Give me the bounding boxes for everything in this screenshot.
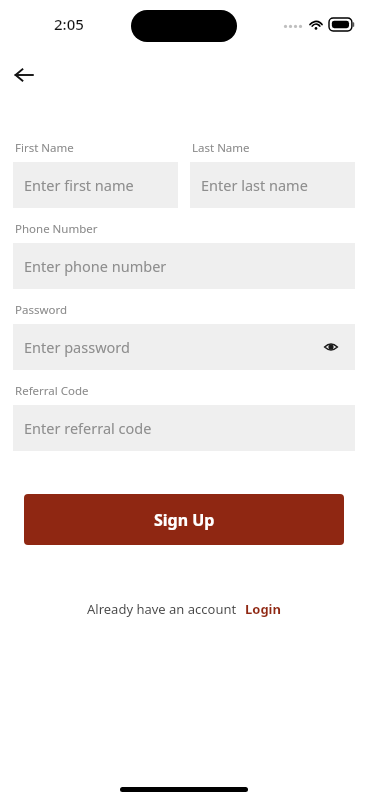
staticText: Enter phone number <box>24 256 167 276</box>
staticText: Sign Up <box>154 509 215 531</box>
button[interactable]: Enter password <box>13 324 355 370</box>
staticText: Password <box>15 302 68 318</box>
staticText: Referral Code <box>15 383 89 399</box>
button[interactable]: Login <box>245 600 281 618</box>
button[interactable]: Enter referral code <box>13 405 355 451</box>
staticText: First Name <box>15 140 74 156</box>
button[interactable]: Enter last name <box>190 162 355 208</box>
staticText: Already have an account <box>87 600 237 618</box>
staticText: Enter last name <box>201 175 308 195</box>
staticText: Login <box>245 600 281 618</box>
staticText: Enter referral code <box>24 418 152 438</box>
button[interactable]: Show password <box>320 336 342 358</box>
staticText: 2:05 <box>54 14 84 34</box>
button[interactable]: Back <box>10 61 38 89</box>
staticText: Enter password <box>24 337 130 357</box>
staticText: Last Name <box>192 140 250 156</box>
staticText: Enter first name <box>24 175 134 195</box>
button[interactable]: Sign Up <box>24 494 344 545</box>
staticText: Phone Number <box>15 221 98 237</box>
button[interactable]: Enter first name <box>13 162 178 208</box>
button[interactable]: Enter phone number <box>13 243 355 289</box>
